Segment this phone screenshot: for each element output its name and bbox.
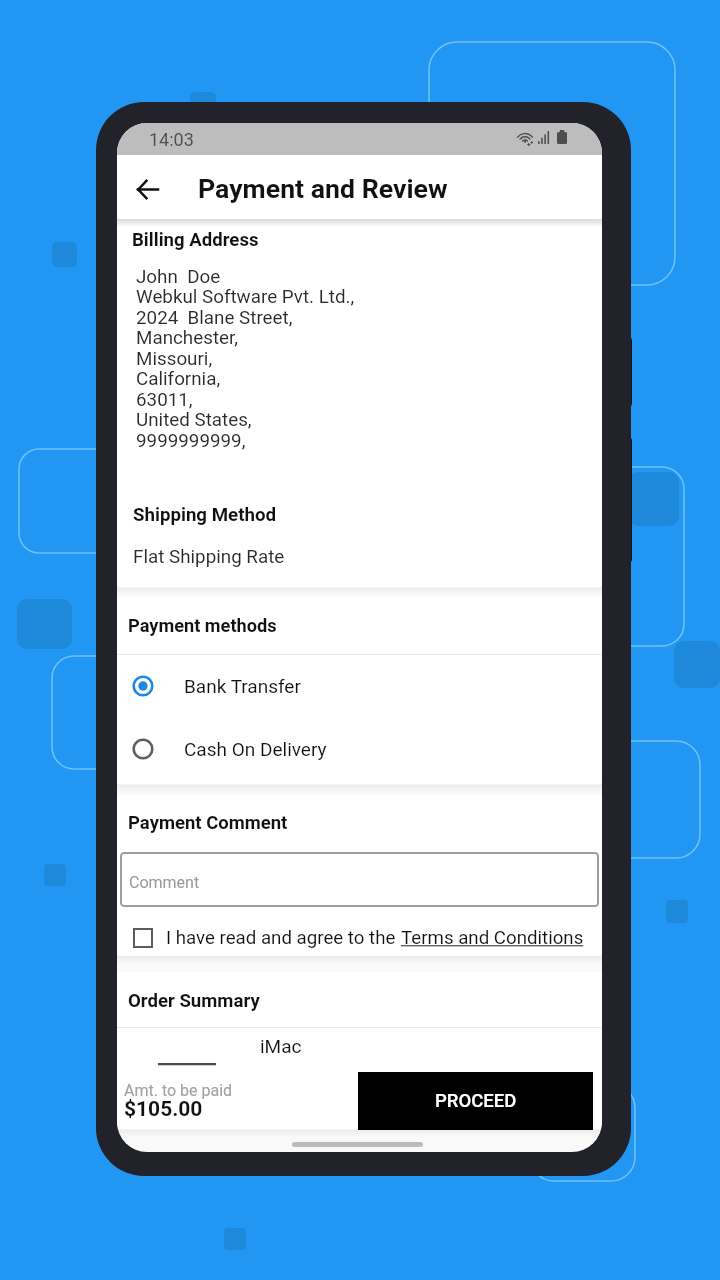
staticText: PROCEED <box>435 1090 517 1112</box>
button[interactable]: PROCEED <box>358 1072 593 1130</box>
staticText: Payment and Review <box>198 173 448 204</box>
staticText: Webkul Software Pvt. Ltd., <box>136 286 355 308</box>
staticText: Comment <box>129 873 200 892</box>
staticText: I have read and agree to the <box>166 927 401 949</box>
button[interactable]: Cash On Delivery <box>117 728 602 770</box>
button[interactable]: Back <box>126 168 168 210</box>
staticText: Terms and Conditions <box>401 927 584 949</box>
staticText: Manchester, <box>136 327 238 349</box>
staticText: Billing Address <box>132 229 259 251</box>
staticText: iMac <box>260 1035 302 1057</box>
staticText: $105.00 <box>124 1097 203 1122</box>
staticText: Order Summary <box>128 990 260 1012</box>
staticText: Shipping Method <box>133 504 277 526</box>
staticText: 14:03 <box>149 129 194 150</box>
staticText: Payment methods <box>128 615 277 636</box>
staticText: Payment Comment <box>128 812 288 834</box>
button[interactable]: Bank Transfer <box>117 665 602 707</box>
staticText: Bank Transfer <box>184 675 301 697</box>
staticText: Cash On Delivery <box>184 738 327 760</box>
staticText: 9999999999, <box>136 430 246 452</box>
staticText: California, <box>136 368 221 390</box>
staticText: Missouri, <box>136 348 213 370</box>
button[interactable]: I have read and agree to the <box>117 919 602 957</box>
staticText: Amt. to be paid <box>124 1081 233 1100</box>
staticText: Flat Shipping Rate <box>133 546 285 568</box>
staticText: John Doe <box>136 266 221 288</box>
button[interactable]: Comment <box>120 852 599 907</box>
staticText: 63011, <box>136 389 193 411</box>
staticText: 2024 Blane Street, <box>136 307 293 329</box>
staticText: United States, <box>136 409 252 431</box>
